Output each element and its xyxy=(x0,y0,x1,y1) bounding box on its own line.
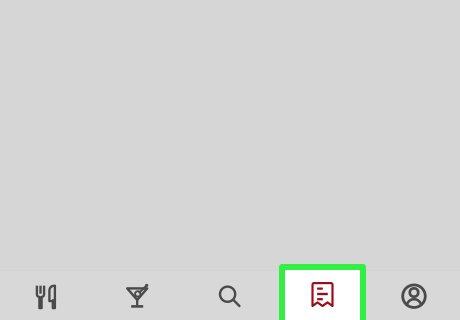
button[interactable]: Nightlife xyxy=(92,271,184,320)
button[interactable]: Account xyxy=(368,271,460,320)
button[interactable]: Search xyxy=(184,271,276,320)
button[interactable]: Restaurants xyxy=(0,271,92,320)
button[interactable]: Orders xyxy=(279,264,366,320)
